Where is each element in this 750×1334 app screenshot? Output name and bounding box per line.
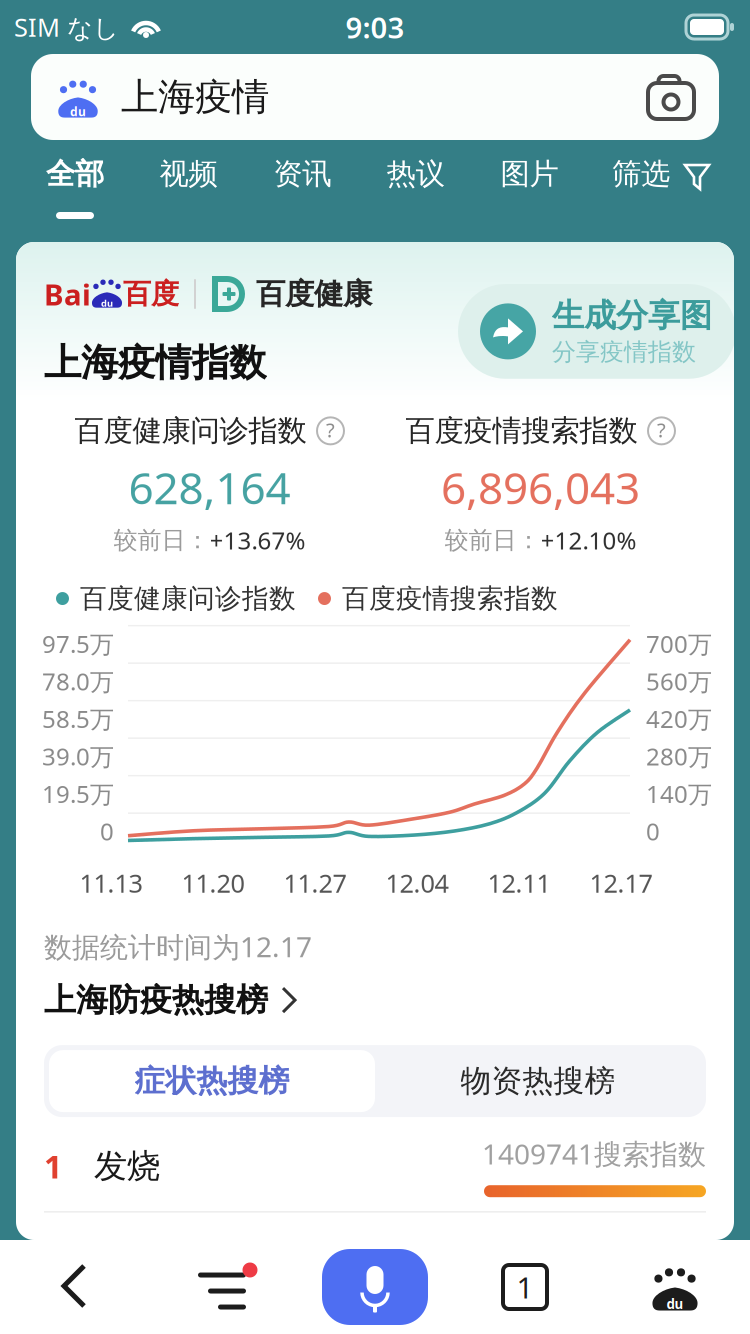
staticText: du	[70, 104, 86, 120]
staticText: 0	[100, 815, 114, 847]
staticText: 1409741搜索指数	[482, 1135, 706, 1172]
staticText: 12.11	[487, 866, 550, 900]
staticText: 9:03	[345, 7, 404, 46]
button[interactable]: 全部	[44, 136, 106, 238]
staticText: 百度疫情搜索指数	[342, 582, 558, 615]
staticText: 百度健康问诊指数	[80, 582, 296, 615]
staticText: 热议	[387, 156, 445, 192]
staticText: 百度	[123, 277, 179, 311]
button[interactable]: Tabs	[450, 1265, 600, 1309]
button[interactable]: 视频	[158, 136, 220, 238]
staticText: 百度疫情搜索指数	[405, 413, 637, 449]
staticText: 全部	[46, 156, 104, 192]
staticText: ?	[657, 417, 666, 443]
staticText: 560万	[646, 665, 712, 697]
staticText: 280万	[646, 740, 712, 772]
staticText: 19.5万	[42, 778, 114, 810]
button[interactable]: 生成分享图	[458, 284, 736, 379]
button[interactable]: 物资热搜榜	[375, 1050, 701, 1112]
staticText: 图片	[500, 156, 558, 192]
staticText: 发烧	[94, 1146, 160, 1186]
staticText: 12.04	[385, 866, 448, 900]
staticText: 11.20	[181, 866, 244, 900]
staticText: 分享疫情指数	[552, 337, 696, 367]
staticText: 420万	[646, 703, 712, 735]
staticText: ?	[326, 417, 335, 443]
button[interactable]: Baidu home	[600, 1263, 750, 1311]
staticText: 78.0万	[42, 665, 114, 697]
button[interactable]: du	[31, 54, 719, 140]
staticText: 较前日：	[113, 525, 209, 555]
staticText: 资讯	[273, 156, 331, 192]
staticText: 上海疫情指数	[44, 340, 266, 386]
staticText: +13.67%	[209, 524, 305, 556]
staticText: du	[101, 297, 113, 309]
button[interactable]: 上海防疫热搜榜	[44, 977, 706, 1023]
button[interactable]: 筛选	[612, 136, 710, 238]
staticText: 700万	[646, 628, 712, 660]
staticText: 628,164	[128, 458, 290, 516]
button[interactable]: 热议	[385, 136, 447, 238]
staticText: Bai	[44, 274, 91, 313]
button[interactable]: 症状热搜榜	[49, 1050, 375, 1112]
staticText: 11.27	[283, 866, 346, 900]
button[interactable]: 图片	[498, 136, 560, 238]
staticText: 1	[516, 1267, 533, 1306]
staticText: 58.5万	[42, 703, 114, 735]
staticText: 生成分享图	[552, 296, 712, 335]
staticText: 上海防疫热搜榜	[44, 980, 268, 1020]
staticText: +12.10%	[540, 524, 636, 556]
staticText: 1	[44, 1145, 62, 1187]
staticText: 较前日：	[444, 525, 540, 555]
staticText: 97.5万	[42, 628, 114, 660]
staticText: 百度健康问诊指数	[74, 413, 306, 449]
staticText: 数据统计时间为12.17	[44, 928, 312, 965]
staticText: 筛选	[612, 156, 670, 192]
staticText: 11.13	[79, 866, 142, 900]
button[interactable]: Menu	[150, 1262, 300, 1312]
button[interactable]: 资讯	[271, 136, 333, 238]
staticText: 39.0万	[42, 740, 114, 772]
staticText: 视频	[160, 156, 218, 192]
staticText: SIM なし	[14, 10, 119, 44]
staticText: 上海疫情	[121, 74, 269, 120]
staticText: 12.17	[589, 866, 652, 900]
button[interactable]: Back	[0, 1262, 150, 1312]
button[interactable]: 1	[24, 1121, 726, 1211]
staticText: 症状热搜榜	[134, 1062, 289, 1100]
staticText: 6,896,043	[441, 458, 640, 516]
button[interactable]: Voice search	[300, 1249, 450, 1325]
staticText: 140万	[646, 778, 712, 810]
staticText: du	[666, 1295, 683, 1313]
staticText: 物资热搜榜	[460, 1062, 615, 1100]
staticText: 0	[646, 815, 660, 847]
staticText: 百度健康	[256, 276, 372, 312]
